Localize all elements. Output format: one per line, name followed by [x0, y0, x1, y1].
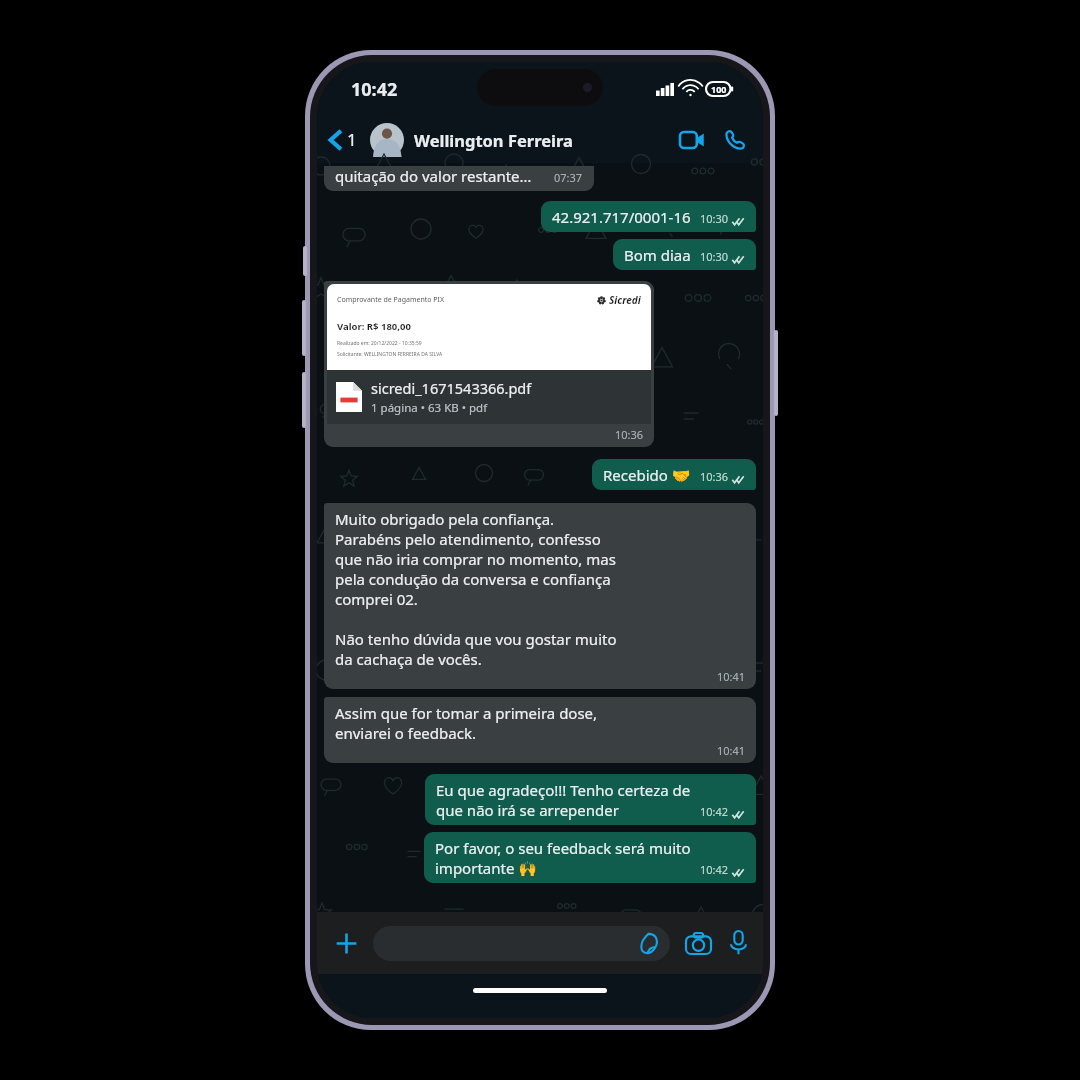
button[interactable]: Por favor, o seu feedback será muito imp…	[424, 832, 756, 883]
staticText: 10:30	[700, 211, 729, 226]
staticText: 10:36	[700, 469, 729, 484]
button[interactable]: Stickers	[638, 933, 659, 954]
staticText: 1 página • 63 KB • pdf	[371, 400, 488, 416]
staticText: Valor: R$ 180,00	[337, 320, 411, 333]
staticText: 07:37	[554, 170, 583, 185]
staticText: Sicredi	[609, 293, 641, 307]
button[interactable]: Muito obrigado pela confiança. Parabéns …	[324, 503, 756, 689]
button[interactable]: quitação do valor restante…	[324, 166, 594, 191]
staticText: Por favor, o seu feedback será muito imp…	[435, 838, 691, 878]
staticText: 100	[711, 83, 727, 95]
button[interactable]: Eu que agradeço!!! Tenho certeza de que …	[425, 774, 756, 825]
staticText: Solicitante: WELLINGTON FERREIRA DA SILV…	[337, 351, 443, 358]
button[interactable]: Camera	[683, 930, 714, 957]
staticText: 10:41	[717, 743, 746, 758]
staticText: quitação do valor restante…	[335, 166, 532, 186]
staticText: Recebido 🤝	[603, 465, 691, 485]
staticText: 10:36	[615, 427, 644, 442]
staticText: 10:41	[717, 669, 746, 684]
button[interactable]: 42.921.717/0001-16	[541, 201, 756, 232]
button[interactable]: Voice message	[728, 928, 749, 958]
staticText: Bom diaa	[624, 245, 691, 265]
button[interactable]: Voice call	[719, 124, 751, 156]
staticText: 10:30	[700, 249, 729, 264]
button[interactable]: Bom diaa	[613, 239, 756, 270]
staticText: 10:42	[351, 77, 398, 102]
staticText: 10:42	[700, 804, 729, 819]
staticText: Eu que agradeço!!! Tenho certeza de que …	[436, 780, 691, 820]
staticText: 42.921.717/0001-16	[552, 207, 691, 227]
button[interactable]: Back	[329, 128, 361, 151]
button[interactable]: Stickers	[373, 926, 670, 961]
staticText: Wellington Ferreira	[414, 129, 573, 151]
staticText: Comprovante de Pagamento PIX	[337, 295, 445, 305]
button[interactable]: Recebido 🤝	[592, 459, 756, 490]
button[interactable]: Comprovante de Pagamento PIX	[324, 281, 654, 447]
staticText: sicredi_1671543366.pdf	[371, 378, 532, 398]
button[interactable]: Attach	[331, 928, 362, 959]
staticText: 1	[347, 128, 357, 151]
staticText: Assim que for tomar a primeira dose, env…	[335, 703, 598, 743]
button[interactable]: Wellington Ferreira	[370, 123, 674, 157]
staticText: Muito obrigado pela confiança. Parabéns …	[335, 509, 617, 669]
button[interactable]: Assim que for tomar a primeira dose, env…	[324, 697, 756, 763]
staticText: 10:42	[700, 862, 729, 877]
button[interactable]: Video call	[674, 126, 710, 154]
staticText: Realizado em: 20/12/2022 - 10:35:59	[337, 340, 422, 347]
